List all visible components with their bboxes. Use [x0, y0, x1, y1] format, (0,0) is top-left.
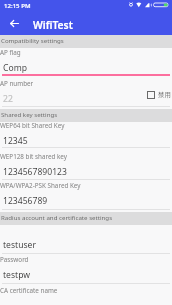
staticText: AP number — [0, 79, 34, 88]
button[interactable]: testuser — [0, 228, 172, 253]
staticText: 1234567890123 — [3, 166, 67, 178]
staticText: Compatibility settings — [1, 36, 64, 44]
button[interactable]: WPA/WPA2-PSK Shared Key — [0, 180, 172, 210]
button[interactable]: 禁用 — [143, 88, 172, 102]
staticText: Shared key settings — [1, 110, 58, 118]
staticText: WEP128 bit shared key — [0, 152, 67, 161]
staticText: 22 — [3, 93, 13, 105]
button[interactable]: WEP128 bit shared key — [0, 151, 172, 181]
staticText: 禁用 — [158, 91, 171, 99]
button[interactable]: CA certificate name — [0, 284, 172, 305]
staticText: CA certificate name — [0, 286, 58, 295]
staticText: AP flag — [0, 48, 21, 57]
button[interactable]: AP flag — [0, 47, 172, 77]
staticText: Radius account and certificate settings — [1, 213, 113, 221]
button[interactable]: AP number — [0, 78, 172, 108]
staticText: 12:15 PM — [4, 1, 31, 9]
staticText: WifiTest — [33, 18, 73, 32]
button[interactable]: Back — [4, 13, 24, 33]
button[interactable]: WEP64 bit Shared Key — [0, 120, 172, 150]
button[interactable]: Password — [0, 254, 172, 284]
staticText: WPA/WPA2-PSK Shared Key — [0, 181, 81, 190]
staticText: WEP64 bit Shared Key — [0, 121, 65, 130]
staticText: testpw — [3, 269, 31, 281]
staticText: Password — [0, 255, 29, 264]
staticText: 12345 — [3, 135, 28, 147]
staticText: testuser — [3, 239, 36, 251]
staticText: 123456789 — [3, 195, 48, 207]
staticText: Comp — [3, 62, 27, 74]
